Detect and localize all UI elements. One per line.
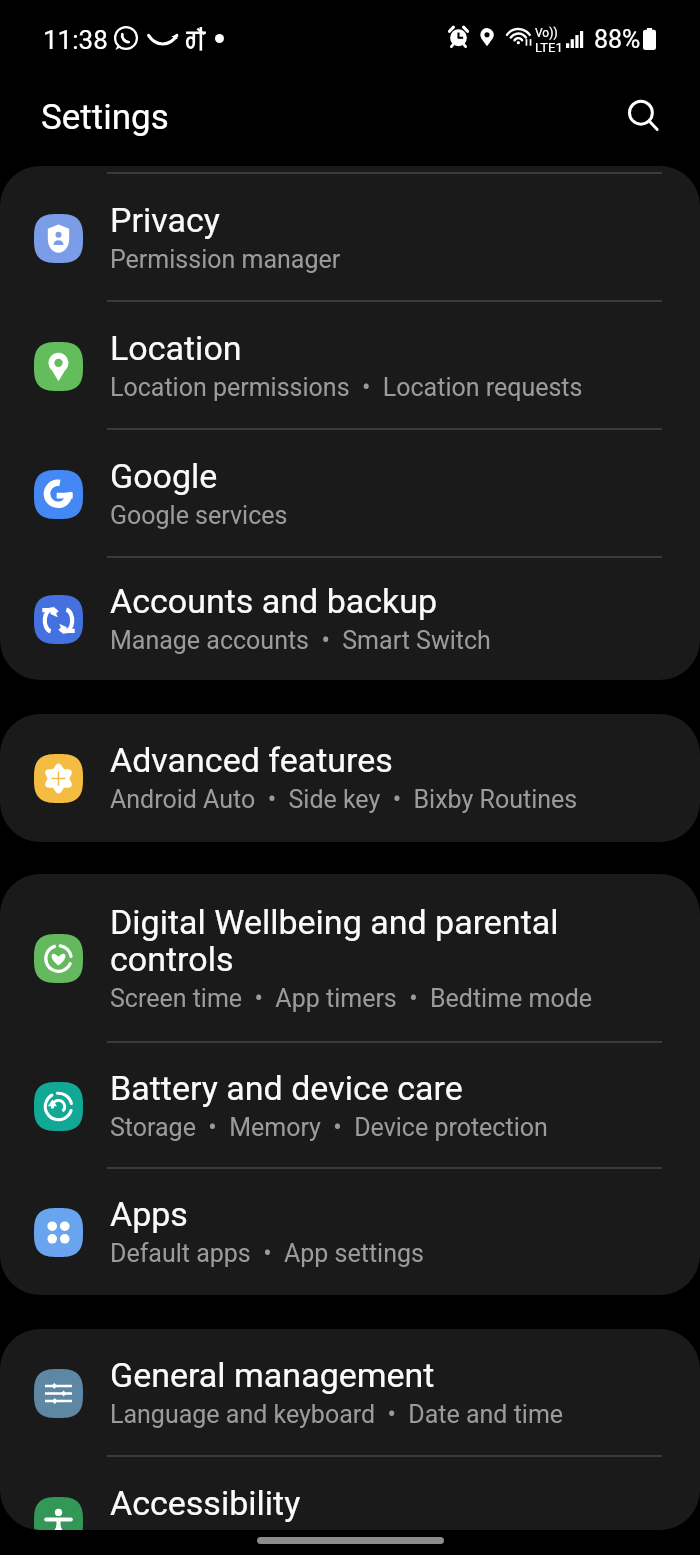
staticText: LTE1 bbox=[535, 40, 563, 55]
staticText: Language and keyboard • Date and time bbox=[110, 1400, 564, 1429]
button[interactable]: Accessibility bbox=[0, 1457, 700, 1530]
button[interactable]: Battery and device care bbox=[0, 1043, 700, 1169]
staticText: General management bbox=[110, 1355, 435, 1395]
button[interactable]: Location bbox=[0, 302, 700, 430]
staticText: Default apps • App settings bbox=[110, 1239, 424, 1268]
staticText: Android Auto • Side key • Bixby Routines bbox=[110, 785, 578, 814]
button[interactable]: Advanced features bbox=[0, 714, 700, 842]
staticText: Advanced features bbox=[110, 740, 393, 780]
staticText: Google bbox=[110, 456, 218, 496]
button[interactable]: Google bbox=[0, 430, 700, 558]
button[interactable]: Apps bbox=[0, 1169, 700, 1295]
staticText: Accounts and backup bbox=[110, 581, 438, 621]
staticText: Location bbox=[110, 328, 242, 368]
button[interactable]: Digital Wellbeing and parental controls bbox=[0, 874, 700, 1043]
staticText: Settings bbox=[41, 97, 169, 138]
staticText: 88% bbox=[594, 25, 641, 54]
staticText: Screen time • App timers • Bedtime mode bbox=[110, 984, 593, 1013]
staticText: Battery and device care bbox=[110, 1068, 463, 1108]
staticText: Google services bbox=[110, 501, 288, 530]
button[interactable]: Accounts and backup bbox=[0, 558, 700, 680]
staticText: Location permissions • Location requests bbox=[110, 373, 583, 402]
staticText: Digital Wellbeing and parental controls bbox=[110, 902, 680, 979]
staticText: Accessibility bbox=[110, 1483, 301, 1523]
staticText: Apps bbox=[110, 1194, 188, 1234]
staticText: Manage accounts • Smart Switch bbox=[110, 626, 491, 655]
staticText: Permission manager bbox=[110, 245, 341, 274]
button[interactable]: General management bbox=[0, 1329, 700, 1457]
staticText: Storage • Memory • Device protection bbox=[110, 1113, 548, 1142]
staticText: 11:38 bbox=[43, 25, 108, 55]
staticText: Privacy bbox=[110, 200, 220, 240]
button[interactable]: Search bbox=[612, 86, 676, 150]
staticText: Vo)) bbox=[535, 26, 558, 40]
button[interactable]: Privacy bbox=[0, 174, 700, 302]
